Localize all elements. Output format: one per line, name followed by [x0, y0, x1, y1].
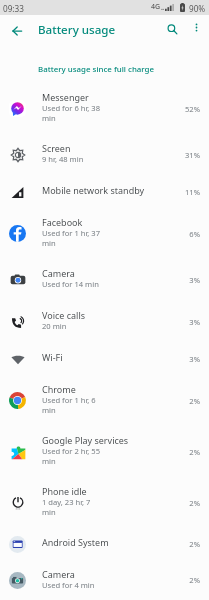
- button[interactable]: Messenger: [0, 84, 209, 135]
- staticText: Battery usage since full charge: [38, 64, 155, 75]
- staticText: 3%: [180, 354, 200, 364]
- button[interactable]: Android System: [0, 529, 209, 561]
- staticText: 3%: [180, 275, 200, 285]
- staticText: 2%: [180, 575, 200, 585]
- staticText: Used for 14 min: [42, 279, 99, 289]
- button[interactable]: Facebook: [0, 209, 209, 260]
- button[interactable]: Back: [2, 16, 31, 45]
- staticText: 2%: [180, 498, 200, 508]
- staticText: 1 day, 23 hr, 7: [42, 497, 91, 507]
- staticText: 3%: [180, 317, 200, 327]
- staticText: Camera: [42, 568, 75, 580]
- staticText: Voice calls: [42, 309, 86, 321]
- button[interactable]: Mobile network standby: [0, 177, 209, 209]
- staticText: 31%: [180, 150, 200, 160]
- staticText: 11%: [180, 187, 200, 197]
- staticText: Battery usage: [38, 22, 116, 38]
- staticText: min: [42, 113, 56, 123]
- button[interactable]: More options: [184, 15, 209, 40]
- staticText: 20 min: [42, 321, 67, 331]
- staticText: 6%: [180, 229, 200, 239]
- button[interactable]: Wi-Fi: [0, 344, 209, 376]
- staticText: Used for 6 hr, 38: [42, 103, 101, 113]
- staticText: Used for 4 min: [42, 580, 95, 590]
- staticText: 09:33: [3, 3, 24, 14]
- staticText: Camera: [42, 267, 75, 279]
- staticText: 4G: [151, 2, 161, 12]
- staticText: 90%: [189, 3, 206, 14]
- staticText: 52%: [180, 104, 200, 114]
- staticText: 9 hr, 48 min: [42, 154, 84, 164]
- staticText: Wi-Fi: [42, 351, 63, 363]
- staticText: Android System: [42, 536, 109, 548]
- button[interactable]: Camera: [0, 561, 209, 600]
- staticText: Used for 1 hr, 37: [42, 228, 101, 238]
- staticText: Used for 2 hr, 55: [42, 446, 101, 456]
- staticText: Mobile network standby: [42, 184, 145, 196]
- staticText: min: [42, 405, 56, 415]
- staticText: Google Play services: [42, 434, 129, 446]
- button[interactable]: Voice calls: [0, 302, 209, 344]
- staticText: 2%: [180, 396, 200, 406]
- staticText: Chrome: [42, 383, 76, 395]
- button[interactable]: Phone idle: [0, 478, 209, 529]
- staticText: 2%: [180, 539, 200, 549]
- staticText: Screen: [42, 142, 71, 154]
- button[interactable]: Google Play services: [0, 427, 209, 478]
- staticText: min: [42, 238, 56, 248]
- staticText: Phone idle: [42, 485, 87, 497]
- button[interactable]: Search: [158, 15, 186, 43]
- staticText: Facebook: [42, 216, 83, 228]
- button[interactable]: Camera: [0, 260, 209, 302]
- staticText: Used for 1 hr, 6: [42, 395, 96, 405]
- staticText: Messenger: [42, 91, 89, 103]
- button[interactable]: Screen: [0, 135, 209, 177]
- button[interactable]: Chrome: [0, 376, 209, 427]
- staticText: 2%: [180, 447, 200, 457]
- staticText: min: [42, 456, 56, 466]
- staticText: min: [42, 507, 56, 517]
